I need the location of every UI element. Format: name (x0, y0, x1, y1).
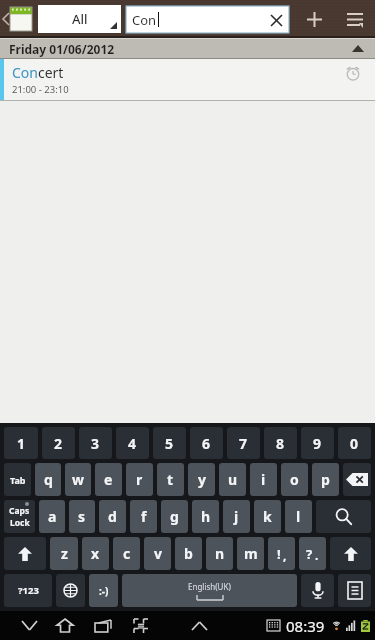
staticText: 2 (54, 434, 63, 453)
staticText: b (184, 544, 193, 563)
button[interactable]: del (343, 463, 371, 496)
staticText: k (263, 507, 272, 526)
button[interactable]: b (175, 537, 202, 570)
button[interactable]: t (157, 463, 184, 496)
button[interactable]: All (38, 5, 121, 33)
button[interactable]: Concert (0, 59, 375, 101)
button[interactable]: c (113, 537, 140, 570)
staticText: x (91, 544, 100, 563)
button[interactable]: mic (301, 574, 334, 607)
button[interactable]: f (130, 500, 157, 533)
button[interactable]: Back to calendar (0, 0, 34, 38)
button[interactable]: l (285, 500, 312, 533)
staticText: Lock (10, 517, 30, 529)
button[interactable]: u (219, 463, 246, 496)
button[interactable]: d (99, 500, 126, 533)
staticText: d (108, 507, 117, 526)
button[interactable]: 9 (301, 427, 334, 459)
staticText: f (141, 507, 147, 526)
button[interactable]: More options (335, 0, 375, 38)
button[interactable]: g (161, 500, 188, 533)
button[interactable]: clip (338, 574, 371, 607)
button[interactable]: ! (268, 537, 295, 570)
staticText: 9 (313, 434, 322, 453)
button[interactable]: 4 (116, 427, 149, 459)
staticText: :-) (99, 584, 109, 598)
staticText: English(UK) (188, 581, 231, 592)
button[interactable]: x (82, 537, 109, 570)
staticText: 6 (202, 434, 211, 453)
staticText: . (315, 547, 319, 563)
button[interactable]: Expand (182, 611, 216, 640)
button[interactable]: n (206, 537, 233, 570)
button[interactable]: q (35, 463, 61, 496)
button[interactable]: Recent apps (84, 611, 122, 640)
button[interactable]: p (312, 463, 339, 496)
button[interactable]: Con (126, 6, 289, 33)
button[interactable]: Home (46, 611, 84, 640)
staticText: p (321, 470, 330, 489)
button[interactable]: a (39, 500, 65, 533)
staticText: ? (306, 545, 313, 563)
staticText: 5 (165, 434, 174, 453)
button[interactable]: z (50, 537, 78, 570)
button[interactable]: Friday 01/06/2012 (0, 38, 375, 59)
staticText: 0 (350, 434, 359, 453)
staticText: g (170, 507, 179, 526)
other: Reminder set (345, 65, 361, 81)
button[interactable]: 6 (190, 427, 223, 459)
button[interactable]: m (237, 537, 264, 570)
button[interactable]: s (69, 500, 95, 533)
staticText: 4 (128, 434, 137, 453)
button[interactable]: Add event (293, 0, 335, 38)
staticText: r (136, 470, 143, 489)
button[interactable]: English(UK) (122, 574, 297, 607)
staticText: 21:00 - 23:10 (12, 83, 69, 96)
button[interactable]: Hide keyboard (12, 611, 46, 640)
button[interactable]: 0 (338, 427, 371, 459)
button[interactable]: o (281, 463, 308, 496)
button[interactable]: 8 (264, 427, 297, 459)
button[interactable]: Caps (4, 500, 35, 533)
button[interactable]: Tab (4, 463, 31, 496)
button[interactable]: Screenshot (122, 611, 160, 640)
button[interactable]: i (250, 463, 277, 496)
button[interactable]: 5 (153, 427, 186, 459)
staticText: Caps (9, 505, 30, 517)
staticText: e (104, 470, 113, 489)
button[interactable]: h (192, 500, 219, 533)
button[interactable]: search (316, 500, 371, 533)
staticText: y (198, 470, 206, 489)
staticText: v (154, 544, 162, 563)
button[interactable]: ?123 (4, 574, 52, 607)
button[interactable]: v (144, 537, 171, 570)
button[interactable]: e (95, 463, 122, 496)
button[interactable]: globe (56, 574, 85, 607)
button[interactable]: 2 (42, 427, 75, 459)
button[interactable]: 1 (4, 427, 38, 459)
staticText: 08:39 (286, 616, 325, 636)
staticText: Tab (10, 474, 26, 486)
button[interactable]: r (126, 463, 153, 496)
staticText: s (78, 507, 86, 526)
button[interactable]: ? (299, 537, 326, 570)
button[interactable]: 3 (79, 427, 112, 459)
button[interactable]: y (188, 463, 215, 496)
staticText: ?123 (18, 584, 39, 597)
staticText: , (283, 547, 287, 563)
button[interactable]: j (223, 500, 250, 533)
button[interactable]: shift (4, 537, 46, 570)
button[interactable]: w (65, 463, 91, 496)
staticText: t (167, 470, 174, 489)
staticText: Friday 01/06/2012 (9, 41, 115, 57)
button[interactable]: 7 (227, 427, 260, 459)
staticText: i (261, 470, 266, 489)
button[interactable]: :-) (89, 574, 118, 607)
button[interactable]: k (254, 500, 281, 533)
button[interactable]: Clear search (263, 7, 289, 33)
button[interactable]: shift (330, 537, 371, 570)
staticText: 7 (239, 434, 248, 453)
staticText: n (215, 544, 225, 563)
staticText: w (72, 470, 84, 489)
staticText: All (72, 10, 88, 28)
